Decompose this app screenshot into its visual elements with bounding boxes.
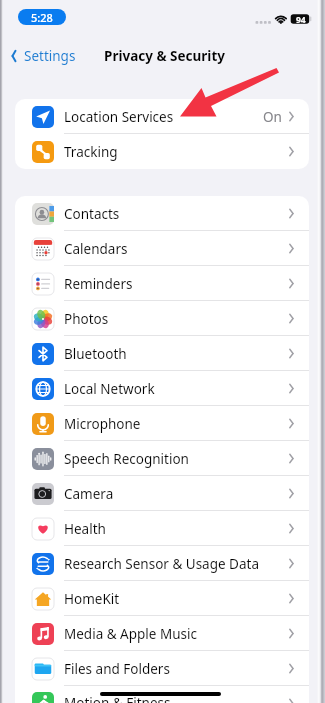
- staticText: Local Network: [64, 380, 155, 398]
- staticText: Microphone: [64, 415, 141, 433]
- staticText: Motion & Fitness: [64, 694, 171, 703]
- staticText: Health: [64, 520, 106, 538]
- button[interactable]: Research Sensor & Usage Data: [15, 546, 309, 581]
- button[interactable]: Contacts: [15, 196, 309, 231]
- staticText: Photos: [64, 310, 109, 328]
- button[interactable]: Reminders: [15, 266, 309, 301]
- button[interactable]: Microphone: [15, 406, 309, 441]
- button[interactable]: Camera: [15, 476, 309, 511]
- staticText: Contacts: [64, 205, 120, 223]
- staticText: Media & Apple Music: [64, 625, 197, 643]
- button[interactable]: Health: [15, 511, 309, 546]
- staticText: Privacy & Security: [104, 47, 225, 65]
- button[interactable]: Files and Folders: [15, 651, 309, 686]
- button[interactable]: Settings: [9, 45, 76, 67]
- staticText: HomeKit: [64, 590, 120, 608]
- staticText: Calendars: [64, 240, 128, 258]
- button[interactable]: Tracking: [15, 134, 309, 169]
- staticText: 5:28: [31, 10, 53, 25]
- staticText: Location Services: [64, 108, 174, 126]
- button[interactable]: Bluetooth: [15, 336, 309, 371]
- button[interactable]: Speech Recognition: [15, 441, 309, 476]
- button[interactable]: Media & Apple Music: [15, 616, 309, 651]
- button[interactable]: Location Services: [15, 99, 309, 134]
- staticText: Research Sensor & Usage Data: [64, 555, 259, 573]
- staticText: On: [263, 108, 282, 126]
- staticText: Files and Folders: [64, 660, 170, 678]
- staticText: Camera: [64, 485, 114, 503]
- staticText: Tracking: [64, 143, 118, 161]
- staticText: Speech Recognition: [64, 450, 189, 468]
- staticText: 94: [296, 14, 306, 24]
- button[interactable]: HomeKit: [15, 581, 309, 616]
- staticText: Bluetooth: [64, 345, 127, 363]
- staticText: Settings: [24, 47, 76, 65]
- staticText: Reminders: [64, 275, 133, 293]
- button[interactable]: Calendars: [15, 231, 309, 266]
- button[interactable]: Photos: [15, 301, 309, 336]
- button[interactable]: Local Network: [15, 371, 309, 406]
- button[interactable]: Motion & Fitness: [15, 686, 309, 703]
